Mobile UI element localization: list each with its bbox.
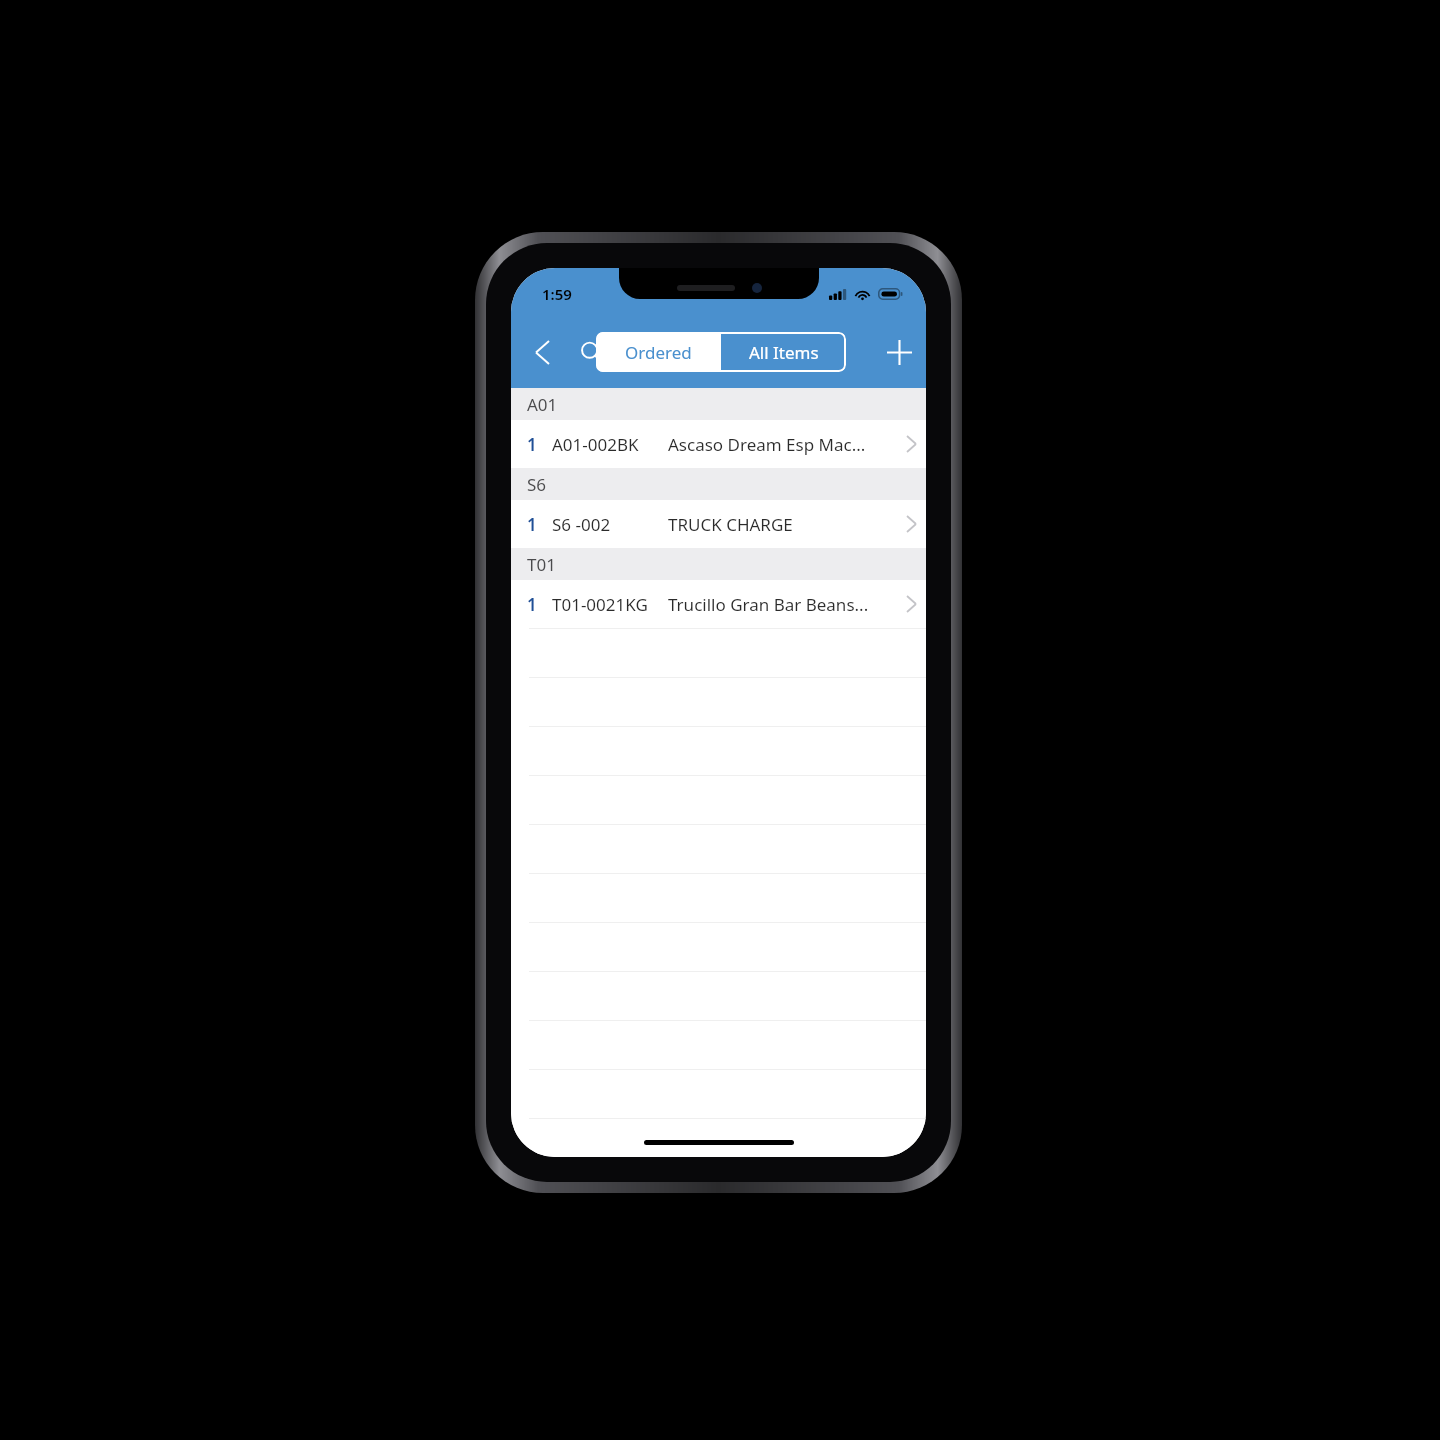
staticText: 1: [527, 513, 537, 536]
button[interactable]: Back: [520, 330, 564, 374]
staticText: S6 -002: [552, 513, 611, 536]
button[interactable]: Search: [569, 330, 613, 374]
staticText: Ordered: [625, 341, 692, 364]
staticText: 1:59: [542, 284, 572, 304]
button[interactable]: 1: [511, 580, 926, 628]
staticText: Trucillo Gran Bar Beans...: [668, 593, 869, 616]
button[interactable]: Ordered: [596, 332, 721, 372]
staticText: TRUCK CHARGE: [668, 513, 793, 536]
staticText: 1: [527, 593, 537, 616]
staticText: Ascaso Dream Esp Mac...: [668, 433, 866, 456]
button[interactable]: 1: [511, 420, 926, 468]
staticText: A01-002BK: [552, 433, 639, 456]
staticText: All Items: [749, 341, 819, 364]
staticText: T01-0021KG: [552, 593, 648, 616]
button[interactable]: All Items: [721, 332, 846, 372]
button[interactable]: Add: [877, 330, 921, 374]
staticText: 1: [527, 433, 537, 456]
staticText: A01: [527, 393, 558, 416]
button[interactable]: 1: [511, 500, 926, 548]
staticText: S6: [527, 473, 547, 496]
staticText: T01: [527, 553, 556, 576]
